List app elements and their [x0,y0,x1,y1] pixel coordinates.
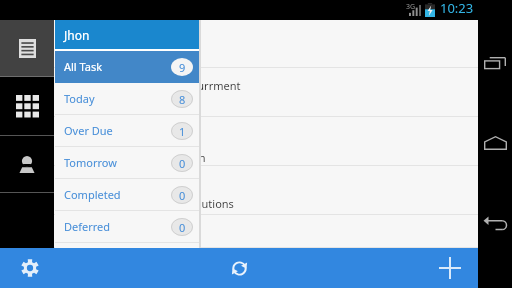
button[interactable] [0,19,478,67]
button[interactable]: Tasks [0,20,54,76]
staticText: Solutions [186,196,234,211]
button[interactable]: Recents [478,20,512,107]
button[interactable]: Back [478,179,512,267]
staticText: 1 [179,124,186,139]
button[interactable]: Completed [55,179,199,210]
button[interactable]: All Task [55,51,199,82]
staticText: Over Due [64,123,113,138]
button[interactable]: Today [55,83,199,114]
staticText: 3G [406,2,416,12]
staticText: Jhon [64,27,90,43]
staticText: 0 [179,220,186,235]
button[interactable]: Profile [0,136,54,192]
staticText: Deferred [64,219,111,234]
button[interactable]: Home [478,107,512,179]
staticText: Recurrment [179,78,241,93]
button[interactable] [0,215,478,247]
staticText: 0 [179,156,186,171]
button[interactable]: Jhon [55,20,199,49]
staticText: Today [64,91,95,106]
staticText: All Task [64,59,103,74]
button[interactable]: Sync [219,248,259,288]
staticText: 9 [179,60,186,75]
staticText: 0 [179,188,186,203]
button[interactable]: Recurrment [0,68,478,116]
staticText: 10:23 [440,0,474,17]
button[interactable]: Deferred [55,211,199,242]
button[interactable]: Grid [0,77,54,135]
button[interactable]: Add [430,248,470,288]
button[interactable]: Mission [0,117,478,165]
staticText: Completed [64,187,121,202]
button[interactable]: Tomorrow [55,147,199,178]
button[interactable]: Over Due [55,115,199,146]
staticText: Tomorrow [64,155,117,170]
staticText: Mission [166,150,206,165]
button[interactable]: Solutions [0,166,478,214]
staticText: 8 [179,92,186,107]
button[interactable]: Settings [10,248,50,288]
